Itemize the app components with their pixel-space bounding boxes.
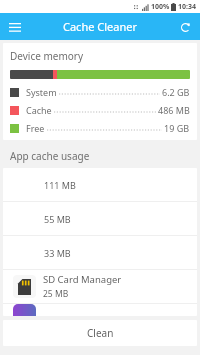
staticText: 6.2 GB <box>162 86 190 98</box>
staticText: Free <box>26 122 45 134</box>
staticText: Clean <box>87 326 114 340</box>
staticText: Device memory <box>10 49 84 63</box>
staticText: 10:34 <box>178 2 196 12</box>
staticText: System <box>26 86 57 98</box>
staticText: 19 GB <box>164 122 190 134</box>
staticText: SD Card Manager <box>43 273 122 286</box>
staticText: 33 MB <box>44 247 71 259</box>
button[interactable]: 55 MB <box>3 202 197 235</box>
button[interactable]: SD Card Manager <box>3 270 197 303</box>
staticText: Cache Cleaner <box>63 19 137 34</box>
staticText: 25 MB <box>43 288 69 300</box>
button[interactable]: 111 MB <box>3 168 197 201</box>
button[interactable]: 33 MB <box>3 236 197 269</box>
staticText: 100% <box>151 2 170 12</box>
staticText: 486 MB <box>158 104 190 116</box>
button[interactable]: Refresh <box>175 17 195 37</box>
staticText: Cache <box>26 104 52 116</box>
staticText: 55 MB <box>44 213 71 225</box>
staticText: App cache usage <box>10 149 90 163</box>
button[interactable]: Clean <box>3 320 197 346</box>
button[interactable] <box>3 304 197 316</box>
button[interactable]: Open navigation menu <box>5 17 25 37</box>
staticText: 111 MB <box>44 179 76 191</box>
